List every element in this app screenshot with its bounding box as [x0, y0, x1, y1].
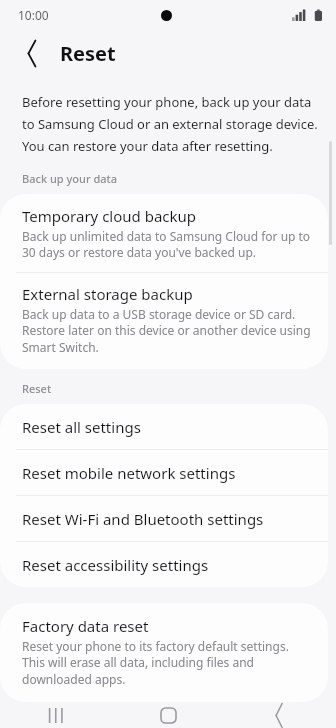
button[interactable]: Back [224, 702, 336, 728]
staticText: Reset accessibility settings [22, 555, 209, 575]
button[interactable]: Factory data reset [0, 603, 328, 702]
button[interactable]: Reset accessibility settings [0, 542, 328, 587]
button[interactable]: Recent apps [0, 702, 112, 728]
button[interactable]: Reset Wi-Fi and Bluetooth settings [0, 496, 328, 541]
button[interactable]: Reset mobile network settings [0, 450, 328, 495]
button[interactable]: External storage backup [0, 284, 328, 356]
staticText: Reset [22, 381, 52, 396]
staticText: Reset [60, 40, 116, 67]
button[interactable]: Home [112, 702, 224, 728]
staticText: Back up your data [22, 171, 118, 186]
staticText: Back up unlimited data to Samsung Cloud … [22, 228, 314, 261]
staticText: Reset mobile network settings [22, 463, 236, 483]
staticText: Temporary cloud backup [22, 206, 197, 226]
button[interactable]: Reset all settings [0, 404, 328, 449]
button[interactable]: Temporary cloud backup [0, 206, 328, 261]
button[interactable]: Back [16, 36, 50, 70]
staticText: External storage backup [22, 284, 193, 304]
staticText: Reset all settings [22, 417, 141, 437]
staticText: 10:00 [18, 7, 49, 23]
staticText: Reset Wi-Fi and Bluetooth settings [22, 509, 264, 529]
staticText: Before resetting your phone, back up you… [22, 93, 318, 155]
staticText: Factory data reset [22, 616, 149, 636]
staticText: Back up data to a USB storage device or … [22, 306, 314, 356]
staticText: Reset your phone to its factory default … [22, 638, 314, 688]
